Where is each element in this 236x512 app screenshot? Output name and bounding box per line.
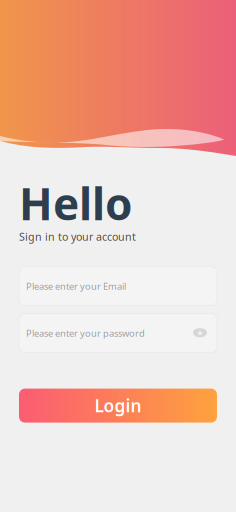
staticText: Hello <box>19 174 133 232</box>
button[interactable]: Please enter your Email <box>19 267 217 306</box>
staticText: Please enter your Email <box>26 280 126 292</box>
button[interactable]: Login <box>19 389 217 423</box>
staticText: Please enter your password <box>26 327 145 339</box>
staticText: Login <box>94 394 141 417</box>
button[interactable]: Please enter your password <box>19 314 217 353</box>
staticText: Sign in to your account <box>19 229 136 244</box>
